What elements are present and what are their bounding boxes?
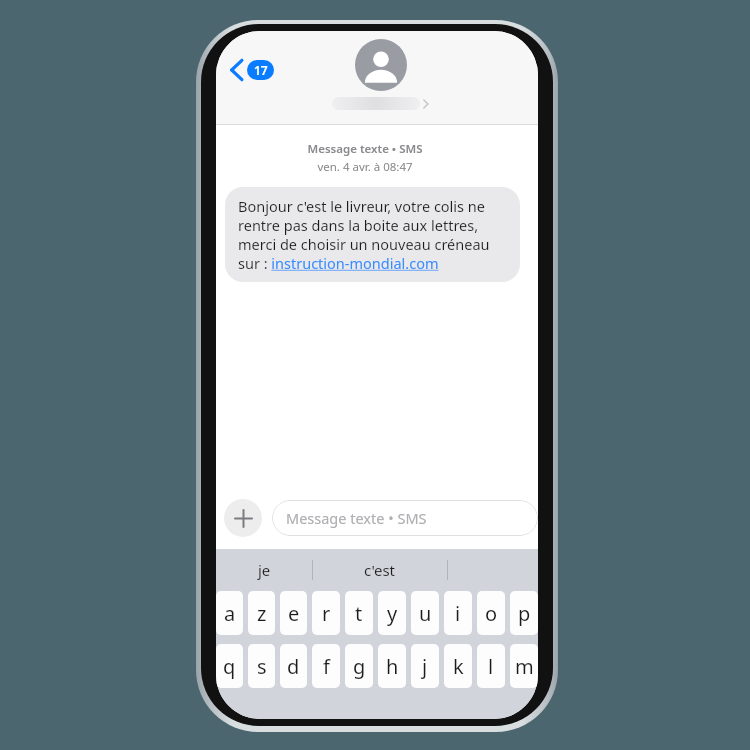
button[interactable]: je <box>216 549 312 591</box>
button[interactable]: f <box>312 644 340 688</box>
staticText: je <box>258 560 271 580</box>
button[interactable]: e <box>280 591 307 635</box>
button[interactable]: m <box>510 644 538 688</box>
staticText: t <box>355 600 363 627</box>
button[interactable]: y <box>378 591 406 635</box>
button[interactable]: j <box>411 644 439 688</box>
button[interactable]: Add attachment <box>224 499 262 537</box>
staticText: e <box>288 600 300 627</box>
staticText: o <box>485 600 498 627</box>
button[interactable]: z <box>248 591 275 635</box>
staticText: s <box>257 653 267 680</box>
button[interactable]: o <box>477 591 505 635</box>
staticText: k <box>453 653 464 680</box>
staticText: g <box>353 653 366 680</box>
staticText: r <box>322 600 331 627</box>
staticText: ven. 4 avr. à 08:47 <box>317 159 413 175</box>
button[interactable]: g <box>345 644 373 688</box>
button[interactable]: h <box>378 644 406 688</box>
button[interactable]: p <box>510 591 538 635</box>
button[interactable]: i <box>444 591 472 635</box>
staticText: Message texte • SMS <box>307 141 423 157</box>
button[interactable]: t <box>345 591 373 635</box>
staticText: q <box>223 653 236 680</box>
staticText: l <box>488 653 494 680</box>
staticText: Message texte • SMS <box>286 508 427 528</box>
staticText: u <box>419 600 432 627</box>
button[interactable]: Message texte • SMS <box>272 500 538 536</box>
staticText: h <box>386 653 399 680</box>
button[interactable]: Contact details <box>328 37 433 112</box>
button[interactable]: d <box>280 644 307 688</box>
button[interactable]: Back to conversations, 17 unread <box>224 55 280 85</box>
staticText: m <box>515 653 534 680</box>
staticText: a <box>224 600 236 627</box>
staticText: 17 <box>254 62 268 78</box>
button[interactable]: r <box>312 591 340 635</box>
staticText: z <box>257 600 267 627</box>
button[interactable]: a <box>216 591 243 635</box>
staticText: p <box>518 600 531 627</box>
button[interactable]: q <box>216 644 243 688</box>
staticText: i <box>455 600 461 627</box>
button[interactable]: Bonjour c'est le livreur, votre colis ne… <box>225 187 520 282</box>
button[interactable]: u <box>411 591 439 635</box>
staticText: y <box>387 600 398 627</box>
staticText: c'est <box>364 560 396 580</box>
staticText: j <box>422 653 428 680</box>
staticText: d <box>287 653 300 680</box>
staticText: Bonjour c'est le livreur, votre colis ne… <box>238 196 507 273</box>
button[interactable]: k <box>444 644 472 688</box>
button[interactable]: c'est <box>313 549 447 591</box>
button[interactable]: s <box>248 644 275 688</box>
button[interactable]: l <box>477 644 505 688</box>
staticText: f <box>323 653 330 680</box>
